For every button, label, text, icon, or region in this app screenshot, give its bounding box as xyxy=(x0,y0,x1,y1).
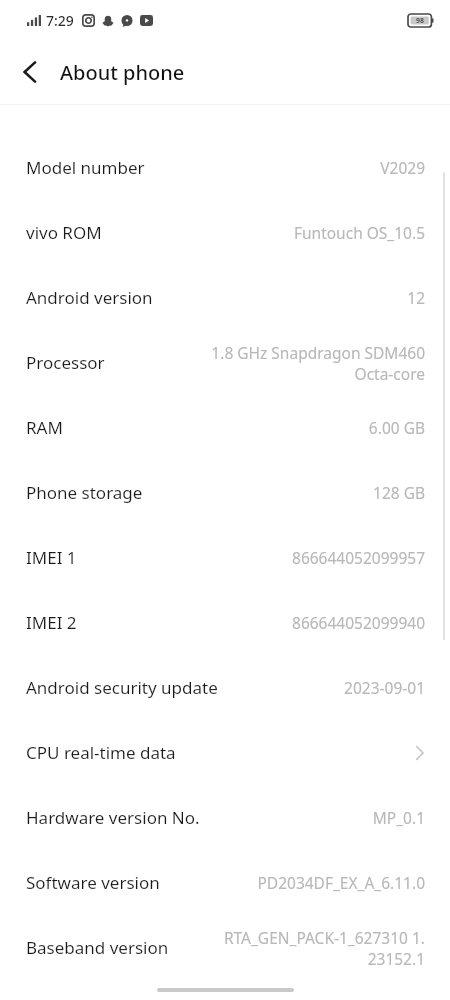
staticText: MP_0.1 xyxy=(372,807,425,828)
staticText: Phone storage xyxy=(26,481,143,504)
staticText: PD2034DF_EX_A_6.11.0 xyxy=(257,872,425,893)
staticText: Processor xyxy=(26,351,105,374)
button[interactable]: Processor xyxy=(0,330,450,395)
staticText: Software version xyxy=(26,871,160,894)
staticText: 2023-09-01 xyxy=(344,677,425,698)
staticText: 12 xyxy=(407,287,425,308)
staticText: 866644052099957 xyxy=(292,547,425,568)
staticText: 128 GB xyxy=(373,482,425,503)
button[interactable]: Model number xyxy=(0,135,450,200)
button[interactable]: IMEI 1 xyxy=(0,525,450,590)
staticText: Model number xyxy=(26,156,145,179)
button[interactable]: IMEI 2 xyxy=(0,590,450,655)
staticText: RAM xyxy=(26,416,63,439)
staticText: 866644052099940 xyxy=(292,612,425,633)
button[interactable]: RAM xyxy=(0,395,450,460)
staticText: Baseband version xyxy=(26,936,169,959)
button[interactable]: Hardware version No. xyxy=(0,785,450,850)
staticText: Android version xyxy=(26,286,153,309)
staticText: Android security update xyxy=(26,676,218,699)
staticText: About phone xyxy=(60,59,185,86)
staticText: V2029 xyxy=(380,157,425,178)
button[interactable]: Software version xyxy=(0,850,450,915)
button[interactable]: Back xyxy=(0,40,60,104)
staticText: 98 xyxy=(416,16,425,26)
staticText: RTA_GEN_PACK-1_627310 1. xyxy=(223,927,425,948)
button[interactable]: CPU real-time data xyxy=(0,720,450,785)
staticText: 7:29 xyxy=(46,11,74,30)
staticText: IMEI 1 xyxy=(26,546,77,569)
staticText: IMEI 2 xyxy=(26,611,77,634)
staticText: 23152.1 xyxy=(367,948,425,969)
button[interactable]: Android version xyxy=(0,265,450,330)
staticText: CPU real-time data xyxy=(26,741,176,764)
button[interactable]: Android security update xyxy=(0,655,450,720)
staticText: Funtouch OS_10.5 xyxy=(293,222,425,243)
staticText: Hardware version No. xyxy=(26,806,200,829)
staticText: Octa-core xyxy=(354,363,425,384)
staticText: vivo ROM xyxy=(26,221,102,244)
staticText: 1.8 GHz Snapdragon SDM460 xyxy=(211,342,425,363)
button[interactable]: Baseband version xyxy=(0,915,450,980)
button[interactable]: vivo ROM xyxy=(0,200,450,265)
staticText: 6.00 GB xyxy=(368,417,425,438)
button[interactable]: Phone storage xyxy=(0,460,450,525)
